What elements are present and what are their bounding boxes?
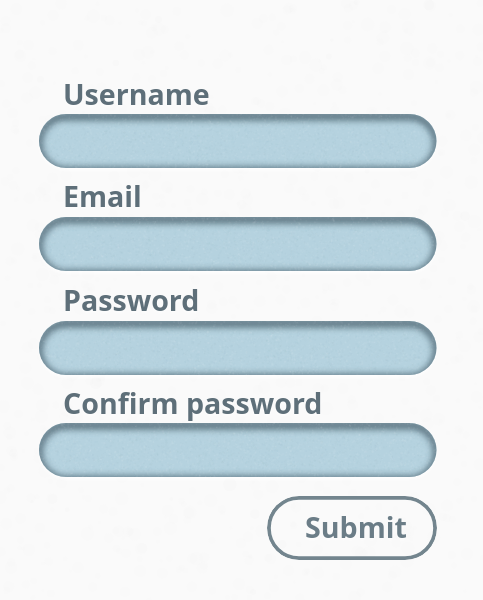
button[interactable]: Email input field — [39, 213, 437, 275]
staticText: Submit — [305, 507, 407, 546]
staticText: Username — [63, 74, 210, 113]
staticText: Confirm password — [63, 383, 323, 422]
button[interactable]: Submit — [267, 496, 437, 560]
button[interactable]: Username input field — [39, 110, 437, 172]
staticText: Password — [63, 280, 200, 319]
button[interactable]: Confirm password input field — [39, 419, 437, 481]
staticText: Email — [63, 176, 142, 215]
button[interactable]: Password input field — [39, 317, 437, 379]
